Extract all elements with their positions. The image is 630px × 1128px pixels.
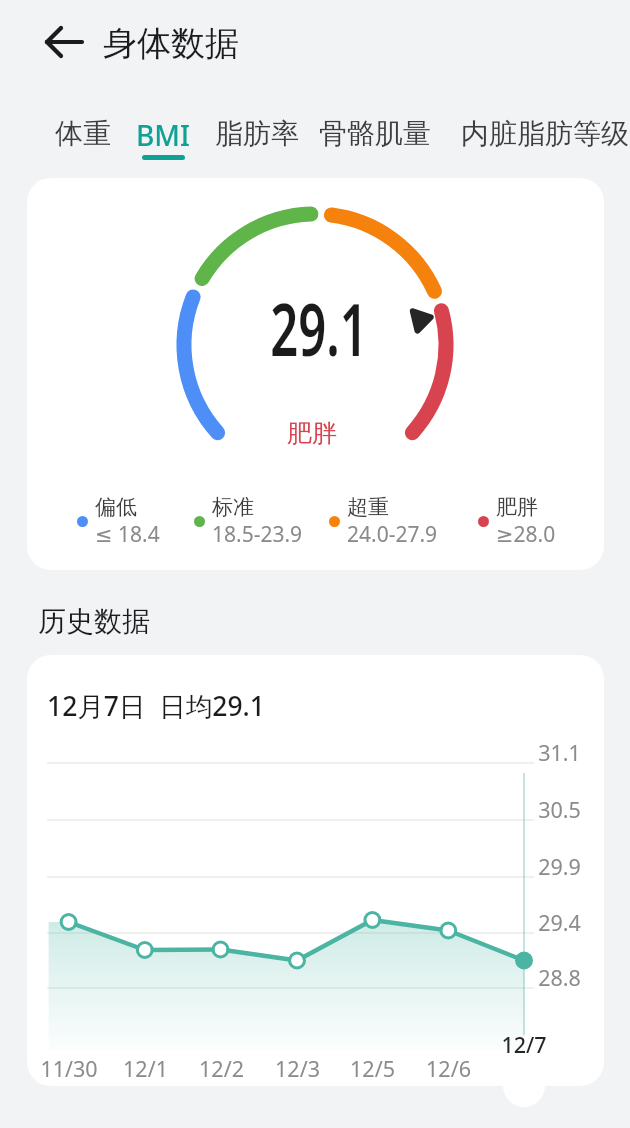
staticText: 标准 <box>212 494 254 520</box>
staticText: 12/2 <box>199 1054 244 1083</box>
staticText: 29.1 <box>270 279 368 377</box>
staticText: 30.5 <box>538 795 581 824</box>
staticText: ≤ 18.4 <box>95 520 160 549</box>
staticText: BMI <box>136 116 190 154</box>
button[interactable]: BMI <box>136 116 190 160</box>
staticText: 28.8 <box>538 963 581 992</box>
staticText: ≥28.0 <box>496 520 556 549</box>
button[interactable] <box>36 20 92 64</box>
staticText: 11/30 <box>40 1054 98 1083</box>
staticText: 超重 <box>347 494 389 520</box>
staticText: 29.9 <box>538 852 581 881</box>
staticText: 身体数据 <box>103 22 239 65</box>
staticText: 18.5-23.9 <box>212 520 303 549</box>
staticText: 体重 <box>55 116 111 151</box>
button[interactable] <box>503 1065 545 1107</box>
button[interactable]: 骨骼肌量 <box>319 116 431 151</box>
staticText: 31.1 <box>538 738 581 767</box>
staticText: 12/5 <box>350 1054 395 1083</box>
staticText: 内脏脂肪等级 <box>461 116 629 151</box>
staticText: 29.4 <box>538 908 581 937</box>
staticText: 脂肪率 <box>215 116 299 151</box>
staticText: 历史数据 <box>38 604 150 639</box>
staticText: 肥胖 <box>496 494 538 520</box>
staticText: 肥胖 <box>287 418 337 449</box>
staticText: 12/1 <box>123 1054 168 1083</box>
button[interactable]: 脂肪率 <box>215 116 299 151</box>
button[interactable]: 体重 <box>55 116 111 151</box>
staticText: 偏低 <box>95 494 137 520</box>
staticText: 12/6 <box>426 1054 471 1083</box>
staticText: 24.0-27.9 <box>347 520 438 549</box>
staticText: 12/3 <box>275 1054 320 1083</box>
staticText: 骨骼肌量 <box>319 116 431 151</box>
staticText: 12月7日 日均29.1 <box>47 688 265 724</box>
staticText: 12/7 <box>501 1030 547 1059</box>
button[interactable]: 内脏脂肪等级 <box>461 116 629 151</box>
